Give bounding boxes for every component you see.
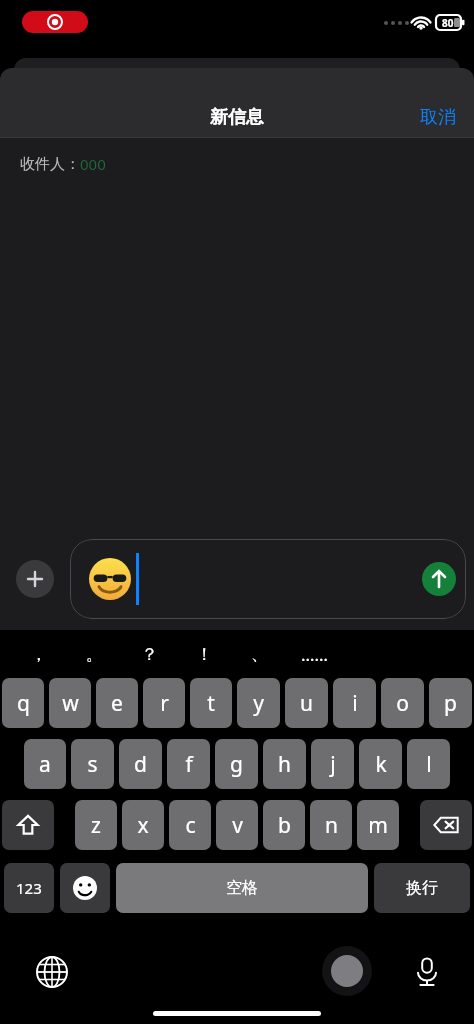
staticText: 、 — [251, 644, 268, 665]
staticText: b — [278, 811, 291, 840]
staticText: 。 — [86, 644, 103, 665]
button[interactable]: e — [96, 678, 138, 728]
button[interactable]: …… — [287, 630, 342, 678]
button[interactable]: 换行 — [374, 863, 470, 913]
staticText: 000 — [80, 154, 106, 174]
staticText: g — [230, 750, 243, 779]
staticText: …… — [301, 643, 328, 666]
staticText: ， — [30, 644, 47, 665]
staticText: w — [62, 689, 79, 718]
button[interactable]: k — [359, 739, 402, 789]
staticText: t — [207, 689, 215, 718]
staticText: 取消 — [420, 106, 456, 129]
button[interactable]: y — [237, 678, 280, 728]
staticText: s — [87, 750, 98, 779]
button[interactable]: Shift — [2, 800, 54, 850]
button[interactable]: s — [71, 739, 114, 789]
button[interactable]: o — [381, 678, 424, 728]
staticText: e — [111, 689, 123, 718]
staticText: c — [185, 811, 196, 840]
staticText: 换行 — [406, 878, 438, 898]
staticText: z — [91, 811, 101, 840]
button[interactable]: j — [311, 739, 354, 789]
staticText: x — [137, 811, 149, 840]
button[interactable]: Screen recording — [22, 11, 88, 33]
button[interactable]: m — [357, 800, 399, 850]
staticText: m — [368, 811, 388, 840]
button[interactable]: 空格 — [116, 863, 368, 913]
button[interactable]: v — [216, 800, 258, 850]
button[interactable]: q — [2, 678, 44, 728]
button[interactable]: ， — [10, 630, 66, 678]
staticText: a — [39, 750, 51, 779]
staticText: r — [160, 689, 169, 718]
button[interactable]: Emoji — [60, 863, 110, 913]
button[interactable]: p — [429, 678, 472, 728]
button[interactable]: 取消 — [402, 98, 474, 137]
button[interactable]: Send — [70, 539, 466, 619]
staticText: i — [352, 689, 358, 718]
button[interactable]: n — [310, 800, 352, 850]
staticText: ！ — [196, 644, 213, 665]
staticText: o — [396, 689, 409, 718]
button[interactable]: 123 — [4, 863, 54, 913]
staticText: v — [232, 811, 243, 840]
staticText: y — [253, 689, 264, 718]
button[interactable]: b — [263, 800, 305, 850]
button[interactable]: f — [167, 739, 210, 789]
button[interactable]: u — [285, 678, 328, 728]
button[interactable]: t — [190, 678, 232, 728]
staticText: ？ — [141, 644, 158, 665]
staticText: u — [300, 689, 313, 718]
button[interactable]: Change keyboard language — [36, 956, 68, 988]
staticText: p — [444, 689, 457, 718]
button[interactable]: x — [122, 800, 164, 850]
button[interactable]: g — [215, 739, 258, 789]
button[interactable]: Send — [422, 562, 456, 596]
button[interactable]: Voice input — [322, 946, 372, 996]
staticText: 80 — [442, 16, 454, 30]
button[interactable]: h — [263, 739, 306, 789]
button[interactable]: z — [75, 800, 117, 850]
button[interactable]: a — [24, 739, 66, 789]
staticText: n — [325, 811, 338, 840]
button[interactable]: ？ — [122, 630, 177, 678]
button[interactable]: Dictation — [412, 956, 442, 986]
button[interactable]: Backspace — [420, 800, 472, 850]
button[interactable]: l — [407, 739, 450, 789]
staticText: 新信息 — [210, 106, 264, 129]
staticText: f — [185, 750, 193, 779]
staticText: 收件人： — [20, 155, 80, 174]
staticText: l — [426, 750, 432, 779]
button[interactable]: ！ — [177, 630, 232, 678]
button[interactable]: 、 — [232, 630, 287, 678]
staticText: 123 — [16, 878, 42, 898]
button[interactable]: r — [143, 678, 185, 728]
staticText: j — [330, 750, 336, 779]
button[interactable]: i — [333, 678, 376, 728]
button[interactable]: w — [49, 678, 91, 728]
button[interactable]: 收件人： — [0, 138, 474, 190]
button[interactable]: 。 — [66, 630, 122, 678]
staticText: k — [375, 750, 387, 779]
button[interactable]: c — [169, 800, 211, 850]
button[interactable]: d — [119, 739, 162, 789]
staticText: q — [17, 689, 30, 718]
staticText: d — [134, 750, 147, 779]
staticText: h — [278, 750, 291, 779]
staticText: 空格 — [226, 878, 258, 898]
button[interactable]: Add attachment — [16, 560, 54, 598]
